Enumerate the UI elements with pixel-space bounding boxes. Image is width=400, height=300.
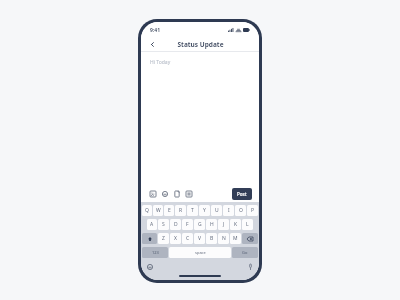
button[interactable]: Attach file — [173, 190, 181, 198]
button[interactable]: U — [211, 205, 222, 216]
staticText: X — [174, 235, 177, 242]
button[interactable]: R — [175, 205, 186, 216]
button[interactable]: Y — [199, 205, 210, 216]
staticText: J — [223, 221, 225, 228]
button[interactable]: Q — [142, 205, 152, 216]
button[interactable]: P — [247, 205, 258, 216]
button[interactable]: X — [170, 233, 181, 244]
staticText: 9:41 — [150, 27, 160, 34]
staticText: M — [233, 235, 238, 242]
staticText: G — [198, 221, 202, 228]
button[interactable]: D — [170, 219, 181, 230]
staticText: F — [186, 221, 189, 228]
button[interactable]: T — [187, 205, 198, 216]
button[interactable]: W — [153, 205, 163, 216]
button[interactable]: Backspace — [242, 233, 258, 244]
staticText: Y — [203, 207, 206, 214]
staticText: A — [150, 221, 154, 228]
staticText: E — [168, 207, 171, 214]
button[interactable]: K — [230, 219, 241, 230]
button[interactable]: H — [206, 219, 217, 230]
staticText: S — [162, 221, 165, 228]
button[interactable]: Go — [232, 247, 258, 258]
staticText: H — [210, 221, 214, 228]
button[interactable]: O — [235, 205, 246, 216]
button[interactable]: I — [223, 205, 234, 216]
button[interactable]: E — [164, 205, 174, 216]
button[interactable]: space — [169, 247, 231, 258]
button[interactable]: S — [158, 219, 169, 230]
staticText: C — [186, 235, 190, 242]
button[interactable]: C — [182, 233, 193, 244]
button[interactable]: Z — [158, 233, 169, 244]
staticText: Post — [237, 191, 247, 197]
staticText: O — [239, 207, 243, 214]
button[interactable]: F — [182, 219, 193, 230]
staticText: Status Update — [177, 40, 224, 49]
button[interactable]: Add GIF — [185, 190, 193, 198]
button[interactable]: V — [194, 233, 205, 244]
button[interactable]: Voice input — [246, 262, 255, 271]
staticText: Go — [242, 250, 248, 255]
button[interactable]: N — [218, 233, 229, 244]
staticText: K — [234, 221, 238, 228]
staticText: L — [246, 221, 249, 228]
staticText: I — [228, 207, 230, 214]
staticText: Q — [145, 207, 149, 214]
staticText: U — [215, 207, 219, 214]
button[interactable]: A — [147, 219, 157, 230]
button[interactable]: 123 — [142, 247, 168, 258]
staticText: P — [251, 207, 255, 214]
staticText: Hi Today — [150, 59, 171, 66]
staticText: Z — [162, 235, 165, 242]
button[interactable]: L — [242, 219, 253, 230]
button[interactable]: M — [230, 233, 241, 244]
staticText: space — [195, 250, 206, 255]
button[interactable]: Shift — [142, 233, 157, 244]
staticText: V — [198, 235, 202, 242]
button[interactable]: G — [194, 219, 205, 230]
staticText: D — [174, 221, 178, 228]
button[interactable]: Add photo — [149, 190, 157, 198]
button[interactable]: Emoji keyboard — [145, 262, 154, 271]
button[interactable]: Add emoji — [161, 190, 169, 198]
button[interactable]: J — [218, 219, 229, 230]
staticText: T — [191, 207, 194, 214]
staticText: 123 — [152, 250, 159, 255]
staticText: N — [222, 235, 226, 242]
staticText: B — [210, 235, 214, 242]
button[interactable]: Post — [232, 188, 252, 200]
button[interactable]: Back — [147, 39, 157, 49]
staticText: R — [179, 207, 183, 214]
button[interactable]: B — [206, 233, 217, 244]
staticText: W — [156, 207, 161, 214]
